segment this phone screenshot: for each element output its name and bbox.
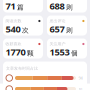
staticText: 发出评论 (49, 18, 65, 23)
staticText: 81 (78, 86, 82, 90)
staticText: 则 (66, 3, 73, 11)
staticText: 1770 (5, 46, 25, 58)
button[interactable]: 关注用户 (47, 38, 87, 58)
staticText: 71 (5, 0, 15, 12)
button[interactable]: 收获喜欢 (3, 38, 43, 58)
staticText: 個 (71, 49, 78, 57)
button[interactable]: 收到评论 (47, 0, 87, 12)
button[interactable]: 阅读次数 (3, 15, 43, 35)
staticText: 688 (49, 0, 64, 12)
staticText: 关注用户 (49, 41, 65, 46)
button[interactable]: 发出评论 (47, 15, 87, 35)
staticText: 篇 (17, 3, 24, 11)
button[interactable]: 81 (6, 83, 87, 90)
staticText: 540 (5, 23, 20, 35)
staticText: 1553 (49, 46, 69, 58)
staticText: 文章发布时间占比 (6, 66, 38, 71)
staticText: 657 (49, 23, 64, 35)
staticText: 阅读次数 (5, 18, 21, 23)
staticText: 则 (66, 26, 73, 34)
staticText: 收获喜欢 (5, 41, 21, 46)
button[interactable]: 发布文章 (3, 0, 43, 12)
staticText: 次 (22, 26, 29, 34)
staticText: 颗 (27, 49, 34, 57)
button[interactable]: 94 (6, 72, 87, 83)
staticText: 94 (78, 75, 82, 81)
